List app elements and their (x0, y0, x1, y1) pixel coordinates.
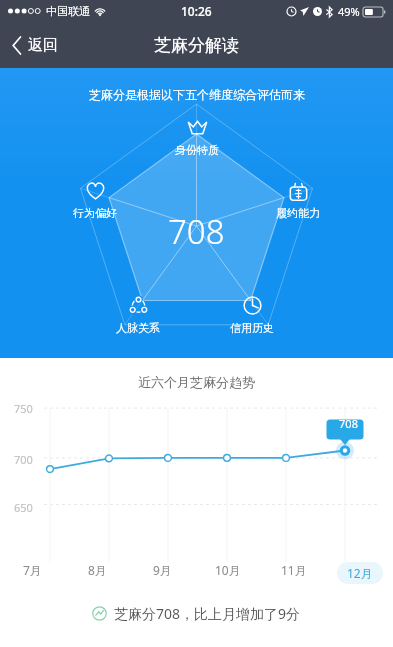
staticText: 49% (338, 4, 360, 19)
button[interactable]: 9月 (130, 562, 195, 578)
staticText: 11月 (281, 562, 307, 578)
staticText: 近六个月芝麻分趋势 (0, 374, 393, 390)
staticText: 返回 (28, 36, 58, 55)
staticText: 650 (14, 500, 33, 515)
staticText: 芝麻分解读 (154, 35, 239, 56)
staticText: 人脉关系 (100, 321, 176, 335)
staticText: 700 (14, 452, 33, 467)
button[interactable]: 12月 (327, 562, 393, 584)
button[interactable]: 行为偏好 (57, 180, 133, 220)
staticText: 信用历史 (214, 321, 290, 335)
button[interactable]: 10月 (195, 562, 261, 578)
button[interactable]: 11月 (261, 562, 327, 578)
staticText: 8月 (88, 562, 107, 578)
staticText: 708 (330, 416, 367, 431)
button[interactable]: 人脉关系 (100, 295, 176, 335)
staticText: 9月 (153, 562, 172, 578)
button[interactable]: 7月 (0, 562, 65, 578)
staticText: 芝麻分708，比上月增加了9分 (114, 604, 301, 623)
button[interactable]: 芝麻分708，比上月增加了9分 (0, 604, 393, 623)
staticText: 750 (14, 401, 33, 416)
staticText: 12月 (347, 565, 373, 581)
button[interactable]: 8月 (65, 562, 130, 578)
button[interactable]: 信用历史 (214, 295, 290, 335)
staticText: 履约能力 (260, 206, 336, 220)
staticText: 身份特质 (159, 143, 235, 157)
staticText: 芝麻分是根据以下五个维度综合评估而来 (89, 87, 305, 102)
button[interactable]: 返回 (0, 22, 74, 68)
staticText: 10:26 (181, 3, 212, 19)
button[interactable]: 履约能力 (260, 180, 336, 220)
button[interactable]: 身份特质 (159, 117, 235, 157)
staticText: 10月 (215, 562, 241, 578)
staticText: 7月 (23, 562, 42, 578)
staticText: 行为偏好 (57, 206, 133, 220)
staticText: 中国联通 (46, 4, 90, 18)
staticText: 708 (168, 209, 225, 254)
